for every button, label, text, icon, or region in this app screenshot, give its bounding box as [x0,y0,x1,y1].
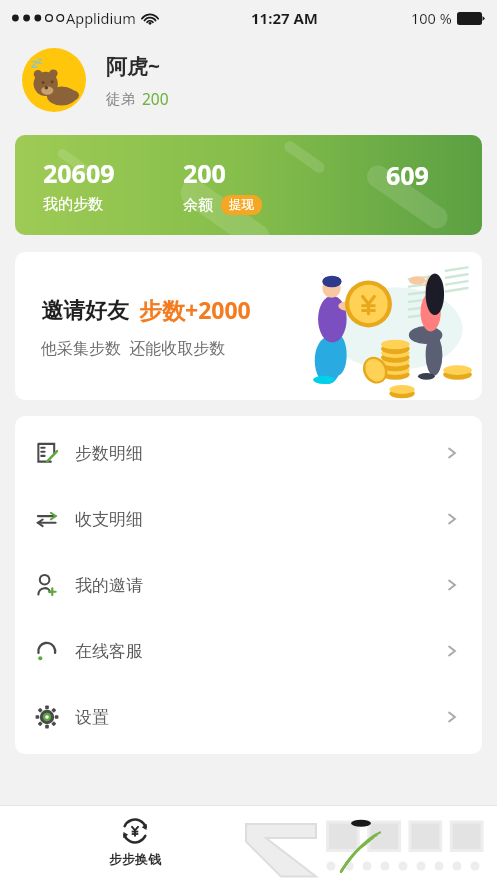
staticText: 我的步数 [43,195,103,214]
button[interactable]: Transactions [15,486,482,552]
other: 步步换钱 [120,816,150,846]
staticText: 我的邀请 [75,575,143,596]
button[interactable]: 步步换钱 [95,816,175,867]
staticText: 他采集步数 还能收取步数 [41,337,226,359]
button[interactable]: Settings [15,684,482,750]
staticText: 步步换钱 [109,851,161,867]
button[interactable]: 邀请好友 [15,252,482,400]
staticText: 609 [386,158,429,192]
button[interactable]: 提现 [221,195,262,215]
staticText: Applidium [66,8,136,28]
staticText: 步数明细 [75,443,143,464]
staticText: 收支明细 [75,509,143,530]
button[interactable]: My invites [15,552,482,618]
other: Transactions [35,507,59,531]
staticText: 200 [142,88,169,109]
staticText: 100 % [411,8,452,28]
staticText: 余额 [183,196,213,215]
staticText: 在线客服 [75,641,143,662]
other: Settings [35,705,59,729]
button[interactable]: 20609 [15,135,482,235]
staticText: 邀请好友 [41,297,129,325]
staticText: 20609 [43,156,115,190]
button[interactable]: Step details [15,420,482,486]
other: Step details [35,441,59,465]
staticText: 200 [183,156,226,190]
staticText: 提现 [229,197,254,213]
staticText: 徒弟 [106,90,135,108]
staticText: 步数+2000 [139,294,251,325]
other: Support [35,639,59,663]
button[interactable]: Support [15,618,482,684]
staticText: 设置 [75,707,109,728]
staticText: 阿虎~ [106,52,161,81]
staticText: 11:27 AM [251,8,318,28]
other: My invites [35,573,59,597]
